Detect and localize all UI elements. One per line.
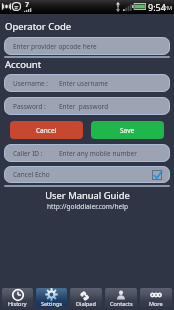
button[interactable]: Settings <box>36 288 67 307</box>
staticText: http://golddialer.com/help <box>47 202 128 211</box>
staticText: Cancel Echo <box>13 170 50 179</box>
staticText: Save <box>120 126 135 135</box>
button[interactable]: Contacts <box>105 288 137 307</box>
staticText: Username : <box>13 79 49 88</box>
button[interactable]: Cancel Echo checkbox <box>152 170 162 180</box>
staticText: Caller ID : <box>13 149 43 158</box>
button[interactable]: Username : <box>4 74 170 92</box>
staticText: Cancel <box>36 126 57 135</box>
button[interactable]: User Manual Guide <box>0 189 174 211</box>
button[interactable]: Password : <box>4 97 170 115</box>
staticText: More <box>149 300 163 307</box>
button[interactable]: Cancel <box>10 121 83 139</box>
button[interactable]: History <box>2 288 33 307</box>
staticText: Enter password <box>59 102 109 111</box>
button[interactable]: More <box>140 288 172 307</box>
staticText: Settings <box>41 300 62 307</box>
staticText: Enter provider opcode here <box>13 42 97 51</box>
staticText: Dialpad <box>76 300 96 307</box>
staticText: Account <box>5 58 42 71</box>
button[interactable]: Dialpad <box>70 288 102 307</box>
button[interactable]: Caller ID : <box>4 144 170 162</box>
staticText: Operator Code <box>5 20 72 33</box>
button[interactable]: Save <box>91 121 164 139</box>
button[interactable]: Enter provider opcode here <box>4 37 170 55</box>
staticText: PM <box>163 4 173 12</box>
button[interactable]: Cancel Echo <box>4 166 170 183</box>
staticText: User Manual Guide <box>45 189 130 202</box>
staticText: 7 <box>25 0 30 10</box>
staticText: History <box>8 300 27 307</box>
staticText: 9:54 <box>148 1 166 13</box>
staticText: Contacts <box>110 300 133 307</box>
staticText: Password : <box>13 102 46 111</box>
staticText: Enter username <box>59 79 108 88</box>
staticText: Enter any mobile number <box>59 149 137 158</box>
